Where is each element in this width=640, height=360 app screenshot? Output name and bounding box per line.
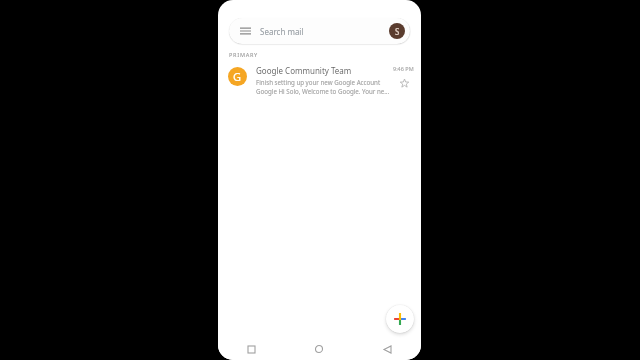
staticText: 9:46 PM <box>393 65 414 72</box>
button[interactable]: Star <box>398 77 410 89</box>
staticText: Search mail <box>260 26 304 37</box>
button[interactable]: Recents <box>218 338 285 360</box>
button[interactable]: Open navigation drawer <box>238 24 252 38</box>
staticText: S <box>395 26 400 37</box>
staticText: Google Hi Solo, Welcome to Google. Your … <box>256 87 390 95</box>
button[interactable]: Open navigation drawer <box>229 18 410 44</box>
staticText: Google Community Team <box>256 65 352 76</box>
button[interactable]: Home <box>285 338 353 360</box>
staticText: G <box>233 69 242 84</box>
staticText: PRIMARY <box>229 51 259 58</box>
staticText: Finish setting up your new Google Accoun… <box>256 78 381 86</box>
button[interactable]: Compose <box>386 305 414 333</box>
button[interactable]: Account <box>389 23 405 39</box>
button[interactable]: G <box>218 63 421 97</box>
button[interactable]: Back <box>353 338 421 360</box>
